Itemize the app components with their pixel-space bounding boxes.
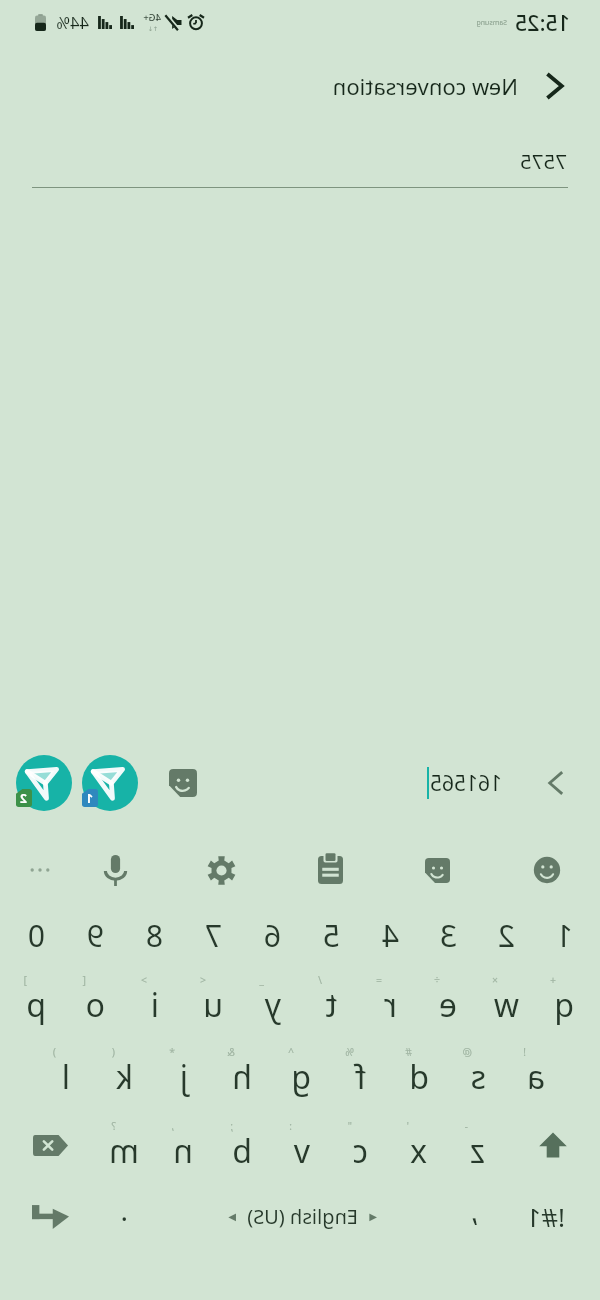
staticText: c — [352, 1129, 368, 1173]
staticText: ^ — [287, 1045, 294, 1059]
staticText: ] — [23, 973, 27, 987]
button[interactable]: * — [154, 1036, 213, 1106]
staticText: _ — [259, 973, 264, 987]
button[interactable]: Back — [526, 62, 582, 110]
button[interactable]: 2 — [477, 905, 535, 965]
button[interactable]: " — [331, 1110, 390, 1180]
staticText: 4 — [381, 915, 399, 956]
button[interactable]: 6 — [243, 905, 302, 965]
button[interactable]: 9 — [66, 905, 125, 965]
staticText: 7575 — [520, 147, 567, 175]
button[interactable]: ÷ — [419, 964, 477, 1034]
button[interactable]: 8 — [125, 905, 184, 965]
staticText: % — [345, 1045, 354, 1059]
button[interactable]: 5 — [302, 905, 361, 965]
button[interactable]: ◀ — [219, 1181, 387, 1251]
staticText: @ — [462, 1045, 472, 1059]
staticText: , — [171, 1119, 174, 1133]
staticText: ? — [111, 1119, 116, 1133]
button[interactable]: ) — [36, 1036, 95, 1106]
button[interactable]: - — [448, 1110, 506, 1180]
staticText: d — [409, 1055, 429, 1099]
staticText: ' — [406, 1119, 409, 1133]
button[interactable]: ! — [507, 1036, 565, 1106]
staticText: 5 — [322, 915, 340, 956]
button[interactable]: Enter — [13, 1181, 89, 1251]
staticText: - — [464, 1119, 468, 1133]
button[interactable]: ; — [213, 1110, 272, 1180]
staticText: 1 — [86, 790, 93, 806]
staticText: t — [325, 983, 337, 1027]
staticText: ( — [111, 1045, 115, 1059]
button[interactable]: Send with SIM 1 — [82, 755, 138, 811]
staticText: ÷ — [433, 973, 440, 987]
staticText: 15:25 — [514, 8, 570, 37]
staticText: [ — [82, 973, 86, 987]
staticText: × — [491, 973, 498, 987]
button[interactable]: . — [94, 1181, 154, 1251]
staticText: v — [293, 1129, 310, 1173]
button[interactable]: @ — [449, 1036, 507, 1106]
button[interactable]: Clipboard — [305, 842, 357, 898]
button[interactable]: 7 — [184, 905, 243, 965]
staticText: ! — [523, 1045, 526, 1059]
staticText: Samsung — [476, 18, 507, 28]
button[interactable]: 3 — [419, 905, 477, 965]
button[interactable]: > — [125, 964, 184, 1034]
staticText: ; — [230, 1119, 233, 1133]
button[interactable]: Backspace — [7, 1110, 95, 1180]
staticText: b — [232, 1129, 252, 1173]
staticText: 9 — [86, 915, 104, 956]
button[interactable]: ^ — [272, 1036, 331, 1106]
staticText: 3 — [439, 915, 457, 956]
button[interactable]: More — [14, 842, 66, 898]
button[interactable]: ( — [95, 1036, 154, 1106]
button[interactable]: , — [154, 1110, 213, 1180]
staticText: + — [549, 973, 556, 987]
staticText: a — [527, 1055, 545, 1099]
button[interactable]: Shift — [506, 1110, 593, 1180]
staticText: = — [375, 973, 382, 987]
staticText: !#1 — [526, 1199, 565, 1234]
staticText: y — [264, 983, 281, 1027]
button[interactable]: Voice input — [90, 842, 142, 898]
staticText: q — [554, 983, 574, 1027]
button[interactable]: + — [535, 964, 593, 1034]
staticText: 6 — [263, 915, 281, 956]
staticText: . — [120, 1191, 128, 1229]
button[interactable]: % — [331, 1036, 390, 1106]
button[interactable]: = — [361, 964, 419, 1034]
button[interactable]: [ — [66, 964, 125, 1034]
staticText: # — [405, 1045, 412, 1059]
button[interactable]: < — [184, 964, 243, 1034]
button[interactable]: : — [272, 1110, 331, 1180]
staticText: 1 — [555, 915, 573, 956]
button[interactable]: Settings — [196, 842, 248, 898]
button[interactable]: / — [302, 964, 361, 1034]
button[interactable]: 4 — [361, 905, 419, 965]
button[interactable]: Expand toolbar — [537, 763, 577, 803]
staticText: * — [169, 1045, 175, 1059]
staticText: 44% — [56, 11, 89, 33]
button[interactable]: # — [390, 1036, 449, 1106]
button[interactable]: ] — [7, 964, 66, 1034]
button[interactable]: 0 — [7, 905, 66, 965]
button[interactable]: Emoji — [521, 842, 573, 898]
button[interactable]: & — [213, 1036, 272, 1106]
button[interactable]: !#1 — [509, 1181, 583, 1251]
button[interactable]: Stickers — [161, 761, 205, 805]
button[interactable]: _ — [243, 964, 302, 1034]
button[interactable]: 1 — [535, 905, 593, 965]
staticText: 7 — [204, 915, 222, 956]
staticText: p — [26, 983, 46, 1027]
button[interactable]: Stickers — [412, 842, 464, 898]
button[interactable]: Send with SIM 2 — [16, 755, 72, 811]
staticText: f — [354, 1055, 366, 1099]
button[interactable]: × — [477, 964, 535, 1034]
staticText: z — [469, 1129, 485, 1173]
button[interactable]: , — [444, 1181, 504, 1251]
button[interactable]: ' — [390, 1110, 448, 1180]
staticText: 0 — [27, 915, 45, 956]
button[interactable]: ? — [95, 1110, 154, 1180]
staticText: s — [470, 1055, 486, 1099]
